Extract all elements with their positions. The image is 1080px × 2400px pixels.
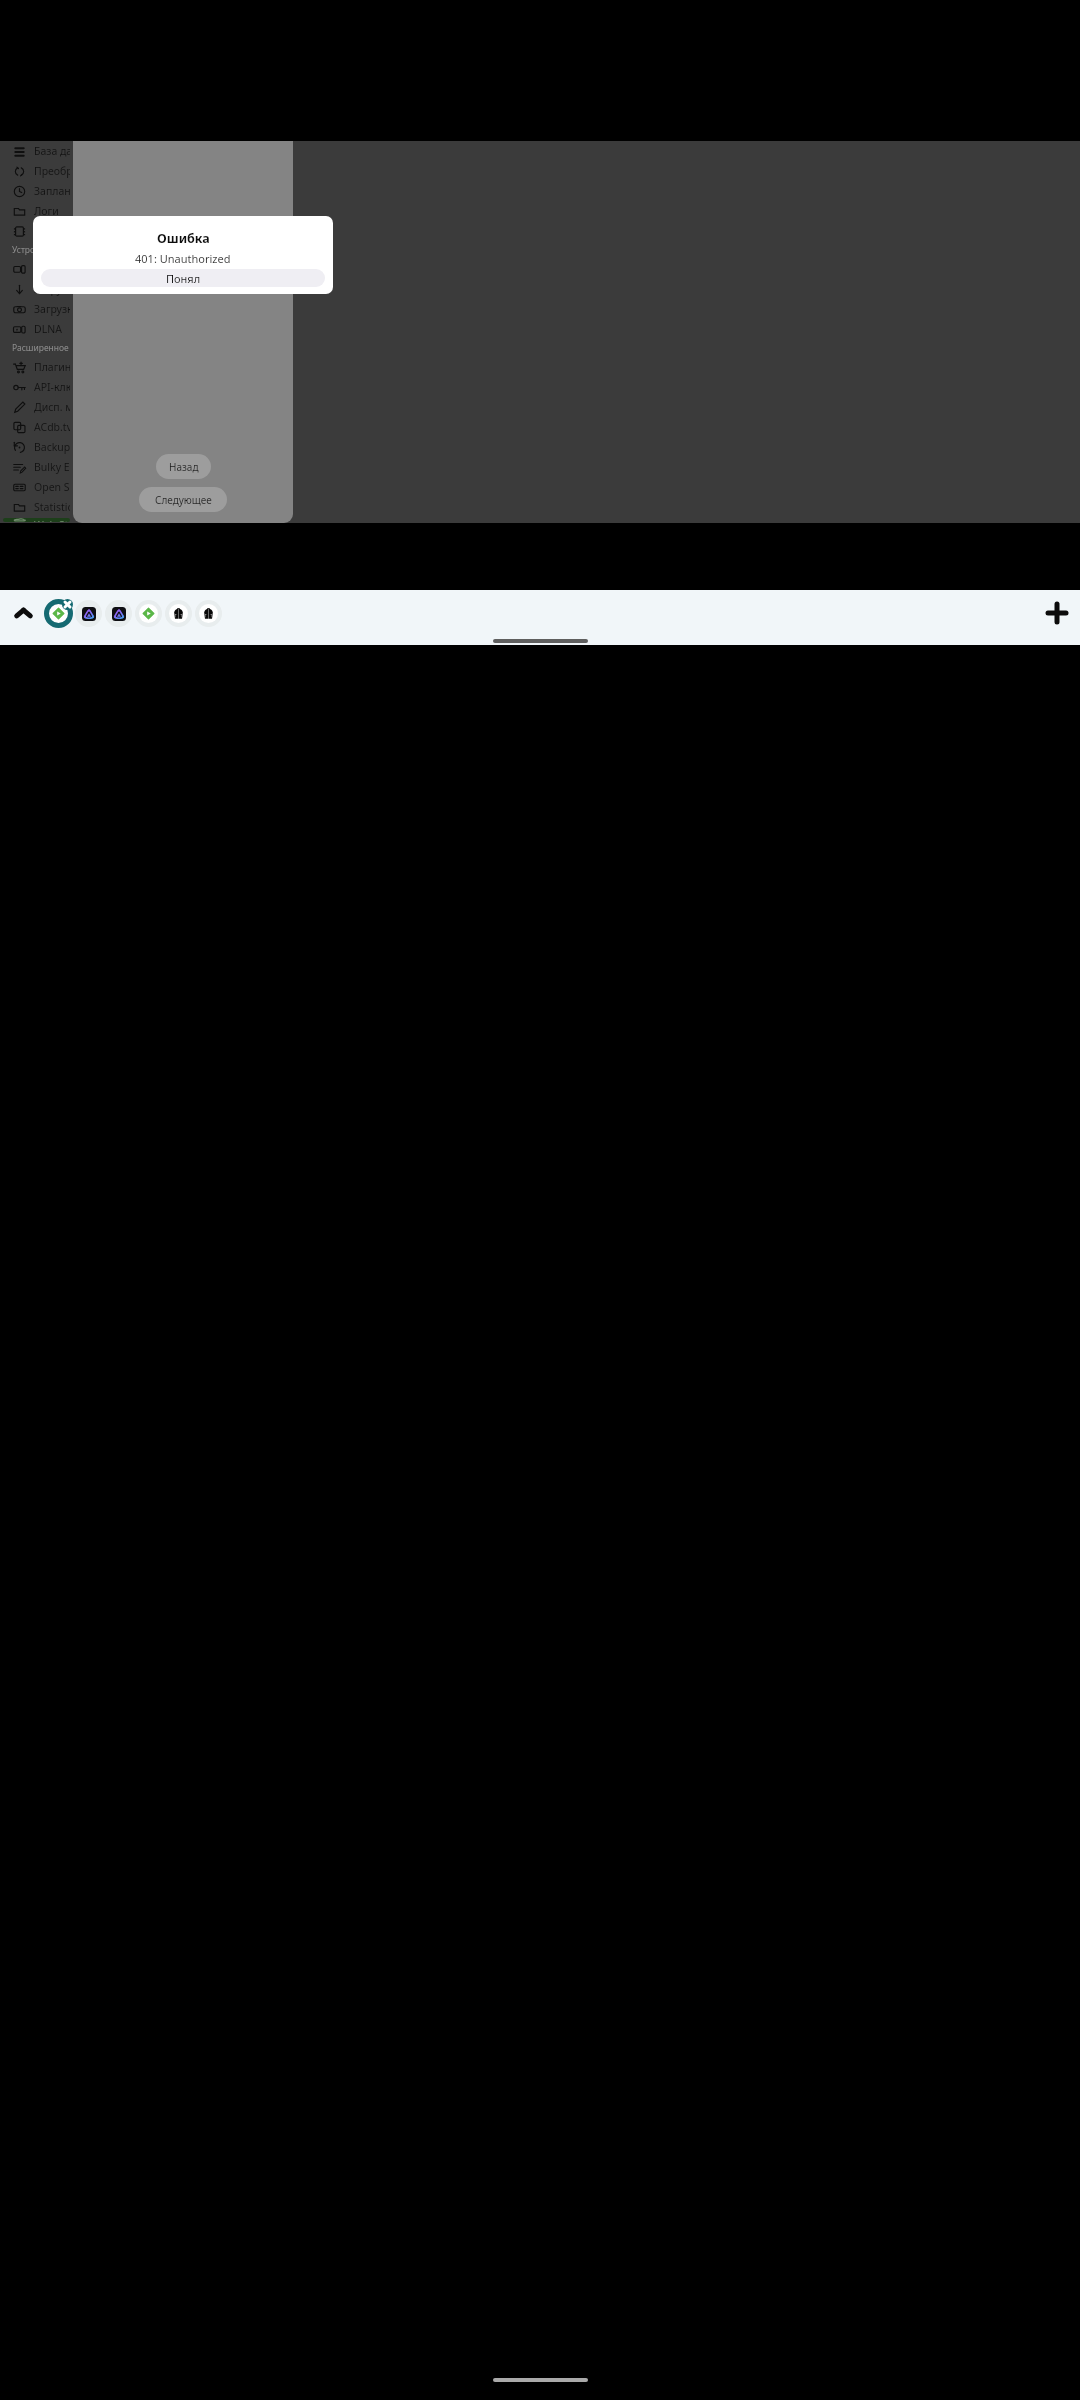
staticText: Загрузки [34, 282, 70, 296]
button[interactable]: Add app [1040, 596, 1074, 630]
staticText: Плагины [34, 360, 70, 374]
button[interactable]: База данных [3, 142, 70, 160]
button[interactable]: Понял [41, 269, 325, 287]
staticText: Назад [169, 460, 199, 474]
button[interactable]: API-ключи [3, 378, 70, 396]
staticText: Расширенное [12, 342, 69, 354]
button[interactable]: Устройства [3, 260, 70, 278]
button[interactable]: Jacket second window [194, 599, 223, 628]
button[interactable]: Backup & Restore [3, 438, 70, 456]
button[interactable]: Bulky Editor [3, 458, 70, 476]
staticText: ACdb.tv [34, 420, 70, 434]
button[interactable]: Jellyfin, active, close [44, 599, 73, 628]
button[interactable]: Expand taskbar [6, 596, 40, 630]
button[interactable]: Statistics [3, 498, 70, 516]
button[interactable]: Загрузки с к [3, 300, 70, 318]
staticText: Устройства [12, 244, 59, 256]
staticText: 401: Unauthorized [135, 251, 231, 266]
staticText: Загрузки с к [34, 302, 70, 316]
button[interactable]: Преобразования [3, 162, 70, 180]
staticText: DLNA [34, 322, 62, 336]
button[interactable]: ACdb.tv [3, 418, 70, 436]
staticText: Запланированные [34, 184, 70, 198]
staticText: Open Subtitles [34, 480, 70, 494]
button[interactable]: Open Subtitles [3, 478, 70, 496]
button[interactable]: Логи [3, 202, 70, 220]
staticText: Следующее [155, 493, 212, 507]
button[interactable]: Дисп. метаданны [3, 398, 70, 416]
button[interactable]: Jacket [164, 599, 193, 628]
staticText: Web Streams [34, 518, 70, 522]
button[interactable]: Cinema Intros [3, 222, 70, 240]
staticText: API-ключи [34, 380, 70, 394]
staticText: Дисп. метаданны [34, 400, 70, 414]
button[interactable]: Назад [156, 454, 211, 479]
button[interactable]: Findroid second window [104, 599, 133, 628]
staticText: Ошибка [157, 230, 210, 247]
staticText: Понял [166, 271, 201, 286]
staticText: Bulky Editor [34, 460, 70, 474]
staticText: База данных [34, 144, 70, 158]
button[interactable]: Плагины [3, 358, 70, 376]
button[interactable]: Jellyfin second window [134, 599, 163, 628]
button[interactable]: Запланированные [3, 182, 70, 200]
button[interactable]: DLNA [3, 320, 70, 338]
staticText: Преобразования [34, 164, 70, 178]
button[interactable]: Web Streams [3, 518, 70, 522]
button[interactable]: Следующее [139, 487, 227, 512]
staticText: Устройства [34, 262, 70, 276]
staticText: Логи [34, 204, 59, 218]
button[interactable]: Загрузки [3, 280, 70, 298]
button[interactable]: Findroid [74, 599, 103, 628]
staticText: Statistics [34, 500, 70, 514]
staticText: Backup & Restore [34, 440, 70, 454]
